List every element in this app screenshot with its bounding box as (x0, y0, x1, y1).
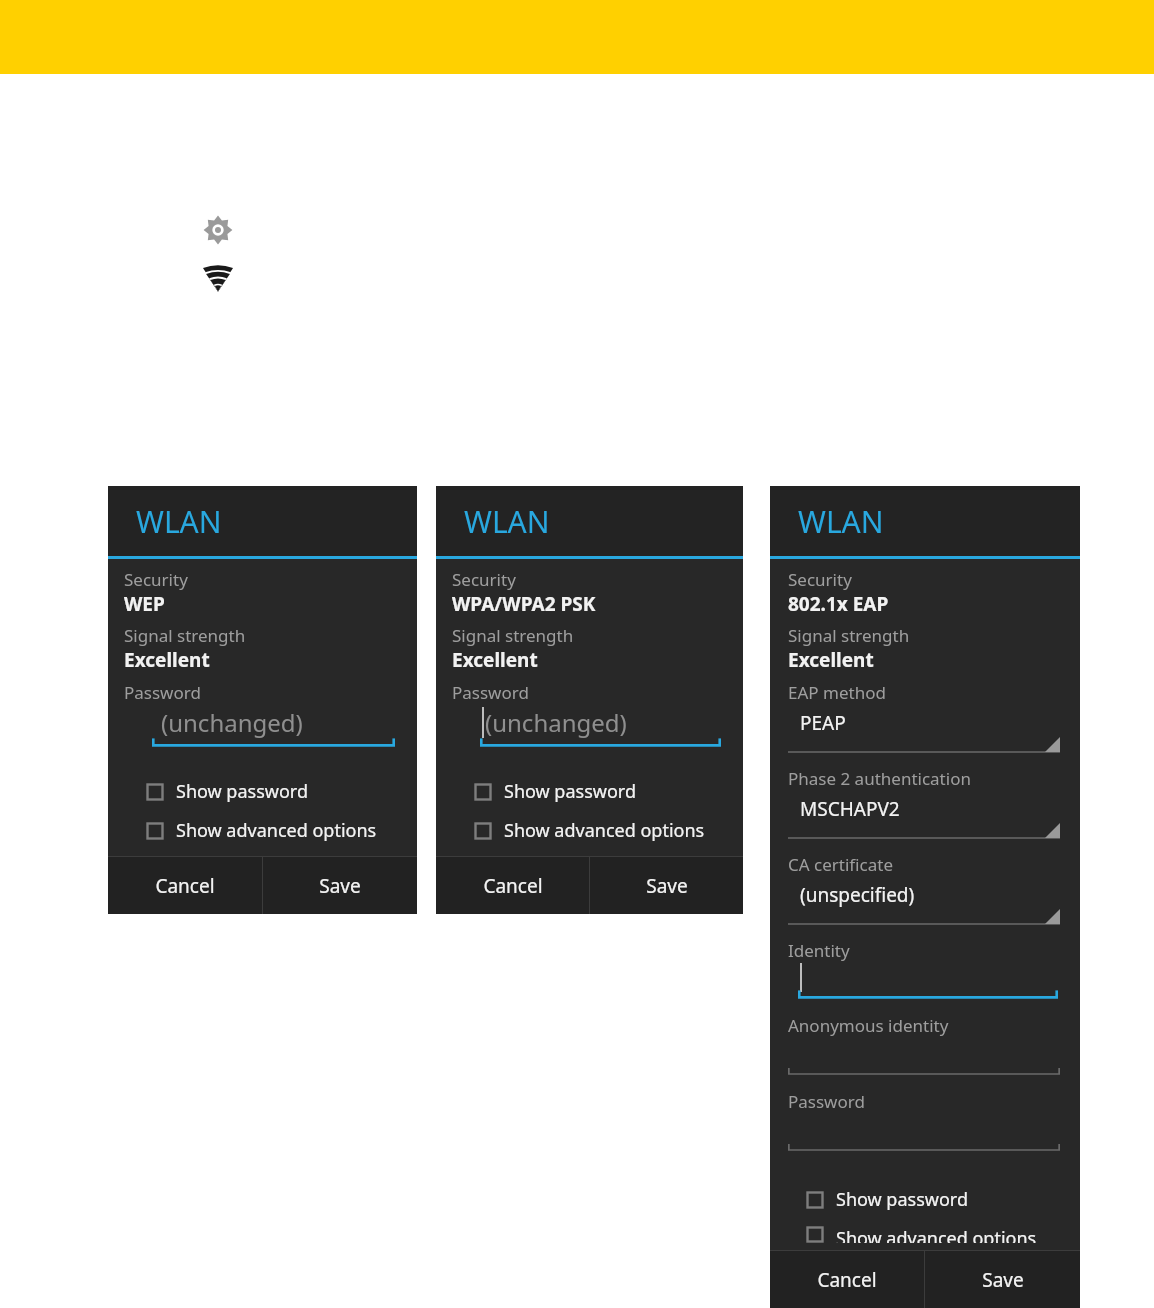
button[interactable]: PEAP (788, 710, 1060, 754)
staticText: Security (452, 568, 516, 591)
staticText: MSCHAPV2 (800, 796, 900, 822)
staticText: Signal strength (788, 624, 910, 647)
staticText: Anonymous identity (788, 1014, 949, 1037)
staticText: WPA/WPA2 PSK (452, 591, 596, 617)
staticText: Excellent (788, 647, 874, 673)
staticText: Cancel (483, 873, 543, 899)
staticText: Save (646, 873, 688, 899)
button[interactable]: Save (590, 857, 743, 914)
button[interactable]: Cancel (436, 857, 589, 914)
staticText: Excellent (124, 647, 210, 673)
button[interactable]: Cancel (108, 857, 262, 914)
button[interactable]: Save (925, 1251, 1080, 1308)
staticText: Show advanced options (176, 818, 377, 843)
staticText: WLAN (798, 501, 884, 542)
staticText: EAP method (788, 681, 886, 704)
button[interactable]: Wi-Fi (203, 262, 233, 292)
staticText: Password (124, 681, 201, 704)
button[interactable]: MSCHAPV2 (788, 796, 1060, 840)
staticText: Save (982, 1267, 1024, 1293)
staticText: 802.1x EAP (788, 591, 889, 617)
staticText: Password (788, 1090, 865, 1113)
staticText: Cancel (155, 873, 215, 899)
staticText: Show password (836, 1187, 968, 1212)
staticText: WLAN (136, 501, 222, 542)
button[interactable]: Show advanced options (124, 811, 399, 850)
staticText: Phase 2 authentication (788, 767, 971, 790)
button[interactable] (788, 1113, 1060, 1152)
staticText: Signal strength (124, 624, 246, 647)
staticText: CA certificate (788, 853, 893, 876)
staticText: Signal strength (452, 624, 574, 647)
button[interactable]: Settings (203, 215, 233, 245)
staticText: WLAN (464, 501, 550, 542)
staticText: Show password (176, 779, 308, 804)
staticText: Save (319, 873, 361, 899)
staticText: Show password (504, 779, 636, 804)
staticText: Password (452, 681, 529, 704)
staticText: (unchanged) (161, 706, 303, 739)
staticText: PEAP (800, 710, 846, 736)
staticText: Show advanced options (504, 818, 705, 843)
button[interactable]: Save (263, 857, 417, 914)
staticText: Show advanced options (836, 1226, 1037, 1243)
staticText: Cancel (817, 1267, 877, 1293)
button[interactable]: Show password (788, 1180, 1060, 1219)
staticText: Security (788, 568, 852, 591)
staticText: Security (124, 568, 188, 591)
button[interactable]: Show advanced options (452, 811, 725, 850)
button[interactable] (788, 1037, 1060, 1076)
staticText: Excellent (452, 647, 538, 673)
staticText: (unchanged) (485, 706, 627, 739)
button[interactable]: Show advanced options (788, 1219, 1060, 1250)
button[interactable]: Show password (452, 772, 725, 811)
button[interactable]: Cancel (770, 1251, 924, 1308)
button[interactable]: (unspecified) (788, 882, 1060, 926)
staticText: (unspecified) (800, 882, 915, 908)
staticText: WEP (124, 591, 165, 617)
button[interactable]: Show password (124, 772, 399, 811)
staticText: Identity (788, 939, 850, 962)
